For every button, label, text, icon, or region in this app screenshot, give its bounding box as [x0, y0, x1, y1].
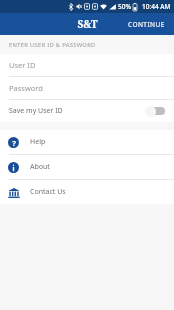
- staticText: User ID: [9, 60, 36, 70]
- staticText: About: [30, 162, 50, 172]
- button[interactable]: About: [0, 155, 174, 179]
- staticText: Help: [30, 137, 46, 147]
- staticText: Save my User ID: [9, 106, 63, 116]
- button[interactable]: User ID: [0, 54, 174, 76]
- staticText: Contact Us: [30, 187, 66, 197]
- button[interactable]: ?: [0, 130, 174, 154]
- button[interactable]: Save my User ID: [0, 100, 174, 122]
- staticText: 10:44 AM: [142, 2, 171, 11]
- staticText: S&T: [77, 17, 98, 31]
- button[interactable]: Save my User ID toggle: [145, 105, 166, 117]
- staticText: Password: [9, 83, 43, 93]
- staticText: CONTINUE: [128, 20, 165, 29]
- staticText: ?: [12, 138, 16, 148]
- staticText: 50%: [118, 2, 131, 11]
- button[interactable]: CONTINUE: [118, 13, 174, 35]
- staticText: ENTER USER ID & PASSWORD: [9, 41, 96, 49]
- button[interactable]: S&T Bank logo: [75, 15, 100, 33]
- button[interactable]: Password: [0, 77, 174, 99]
- button[interactable]: Contact Us: [0, 180, 174, 204]
